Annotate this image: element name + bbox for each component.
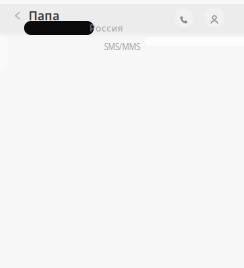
button[interactable]: Call xyxy=(175,8,192,26)
button[interactable]: Папа xyxy=(8,2,65,28)
button[interactable]: Contact info xyxy=(205,8,223,26)
staticText: SMS/MMS xyxy=(104,42,140,52)
staticText: Россия xyxy=(89,22,122,34)
staticText: Папа xyxy=(28,7,59,23)
